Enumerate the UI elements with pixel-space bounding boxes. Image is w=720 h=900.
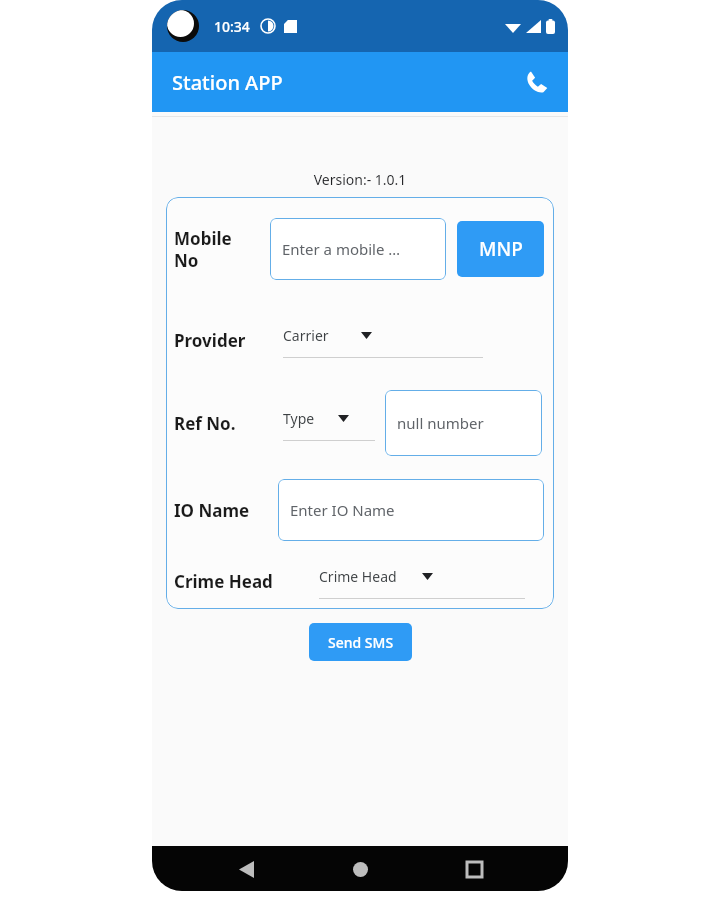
button[interactable]: Type: [283, 405, 375, 441]
button[interactable]: MNP: [457, 221, 544, 277]
staticText: Provider: [174, 329, 246, 352]
staticText: Send SMS: [328, 633, 394, 652]
staticText: Carrier: [283, 326, 329, 345]
staticText: Crime Head: [319, 567, 397, 586]
button[interactable]: Carrier: [283, 322, 483, 358]
staticText: Enter IO Name: [290, 500, 395, 520]
button[interactable]: Call: [514, 60, 558, 104]
button[interactable]: Send SMS: [309, 623, 412, 661]
staticText: Enter a mobile …: [282, 239, 401, 259]
staticText: IO Name: [174, 499, 250, 522]
button[interactable]: Back: [226, 849, 266, 889]
button[interactable]: Home: [340, 849, 380, 889]
staticText: Type: [283, 409, 315, 428]
button[interactable]: Enter a mobile …: [270, 218, 446, 280]
staticText: Ref No.: [174, 412, 236, 435]
button[interactable]: Enter IO Name: [278, 479, 544, 541]
staticText: 10:34: [214, 17, 250, 36]
button[interactable]: Crime Head: [319, 563, 525, 599]
button[interactable]: null number: [385, 390, 542, 456]
staticText: MNP: [479, 236, 523, 262]
staticText: null number: [397, 413, 484, 433]
staticText: Version:- 1.0.1: [152, 170, 568, 189]
staticText: Crime Head: [174, 570, 273, 593]
staticText: Mobile No: [174, 227, 232, 272]
staticText: Station APP: [172, 69, 283, 96]
button[interactable]: Recent apps: [454, 849, 494, 889]
